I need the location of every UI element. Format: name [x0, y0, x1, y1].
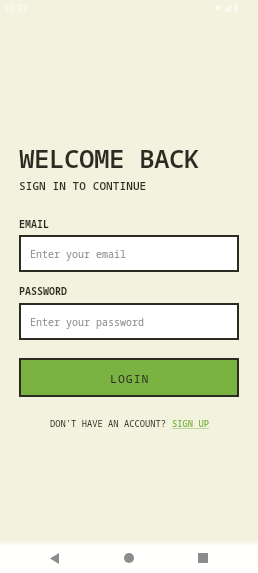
staticText: SIGN IN TO CONTINUE — [19, 178, 147, 193]
staticText: Enter your password — [30, 315, 144, 329]
button[interactable]: SIGN UP — [172, 418, 209, 430]
staticText: EMAIL — [19, 217, 49, 231]
button[interactable]: Enter your email — [21, 237, 237, 270]
staticText: 10:37 — [4, 2, 28, 14]
button[interactable]: Enter your password — [21, 305, 237, 338]
button[interactable]: LOGIN — [21, 360, 237, 395]
staticText: WELCOME BACK — [19, 140, 200, 175]
button[interactable]: Home — [109, 543, 149, 573]
staticText: PASSWORD — [19, 284, 67, 298]
button[interactable]: Back — [34, 543, 74, 573]
staticText: DON'T HAVE AN ACCOUNT? — [50, 418, 172, 430]
staticText: Enter your email — [30, 247, 126, 261]
staticText: LOGIN — [110, 371, 150, 387]
button[interactable]: Recent apps — [183, 543, 223, 573]
